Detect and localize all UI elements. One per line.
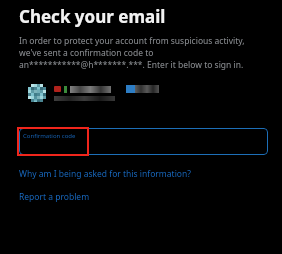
staticText: Confirmation code	[23, 132, 76, 140]
button[interactable]	[19, 128, 268, 155]
button[interactable]: Why am I being asked for this informatio…	[19, 168, 191, 180]
staticText: In order to protect your account from su…	[19, 35, 268, 71]
staticText: Why am I being asked for this informatio…	[19, 168, 191, 180]
staticText: Check your email	[19, 5, 166, 28]
button[interactable]: Report a problem	[19, 191, 90, 203]
staticText: Report a problem	[19, 191, 90, 203]
button[interactable]	[28, 79, 268, 107]
